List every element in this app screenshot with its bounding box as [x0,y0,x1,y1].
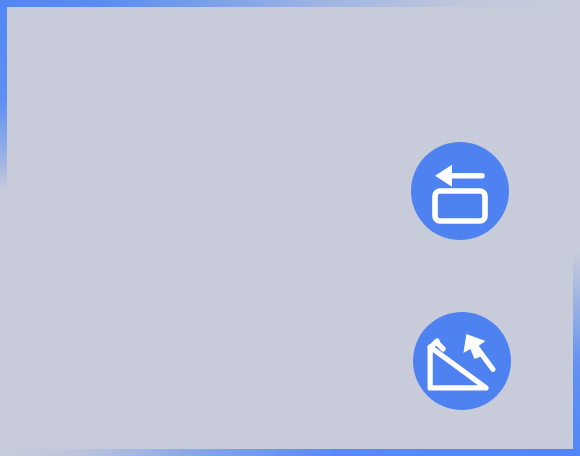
button[interactable]: Resize window [413,312,511,410]
button[interactable]: Move window back [411,142,509,240]
